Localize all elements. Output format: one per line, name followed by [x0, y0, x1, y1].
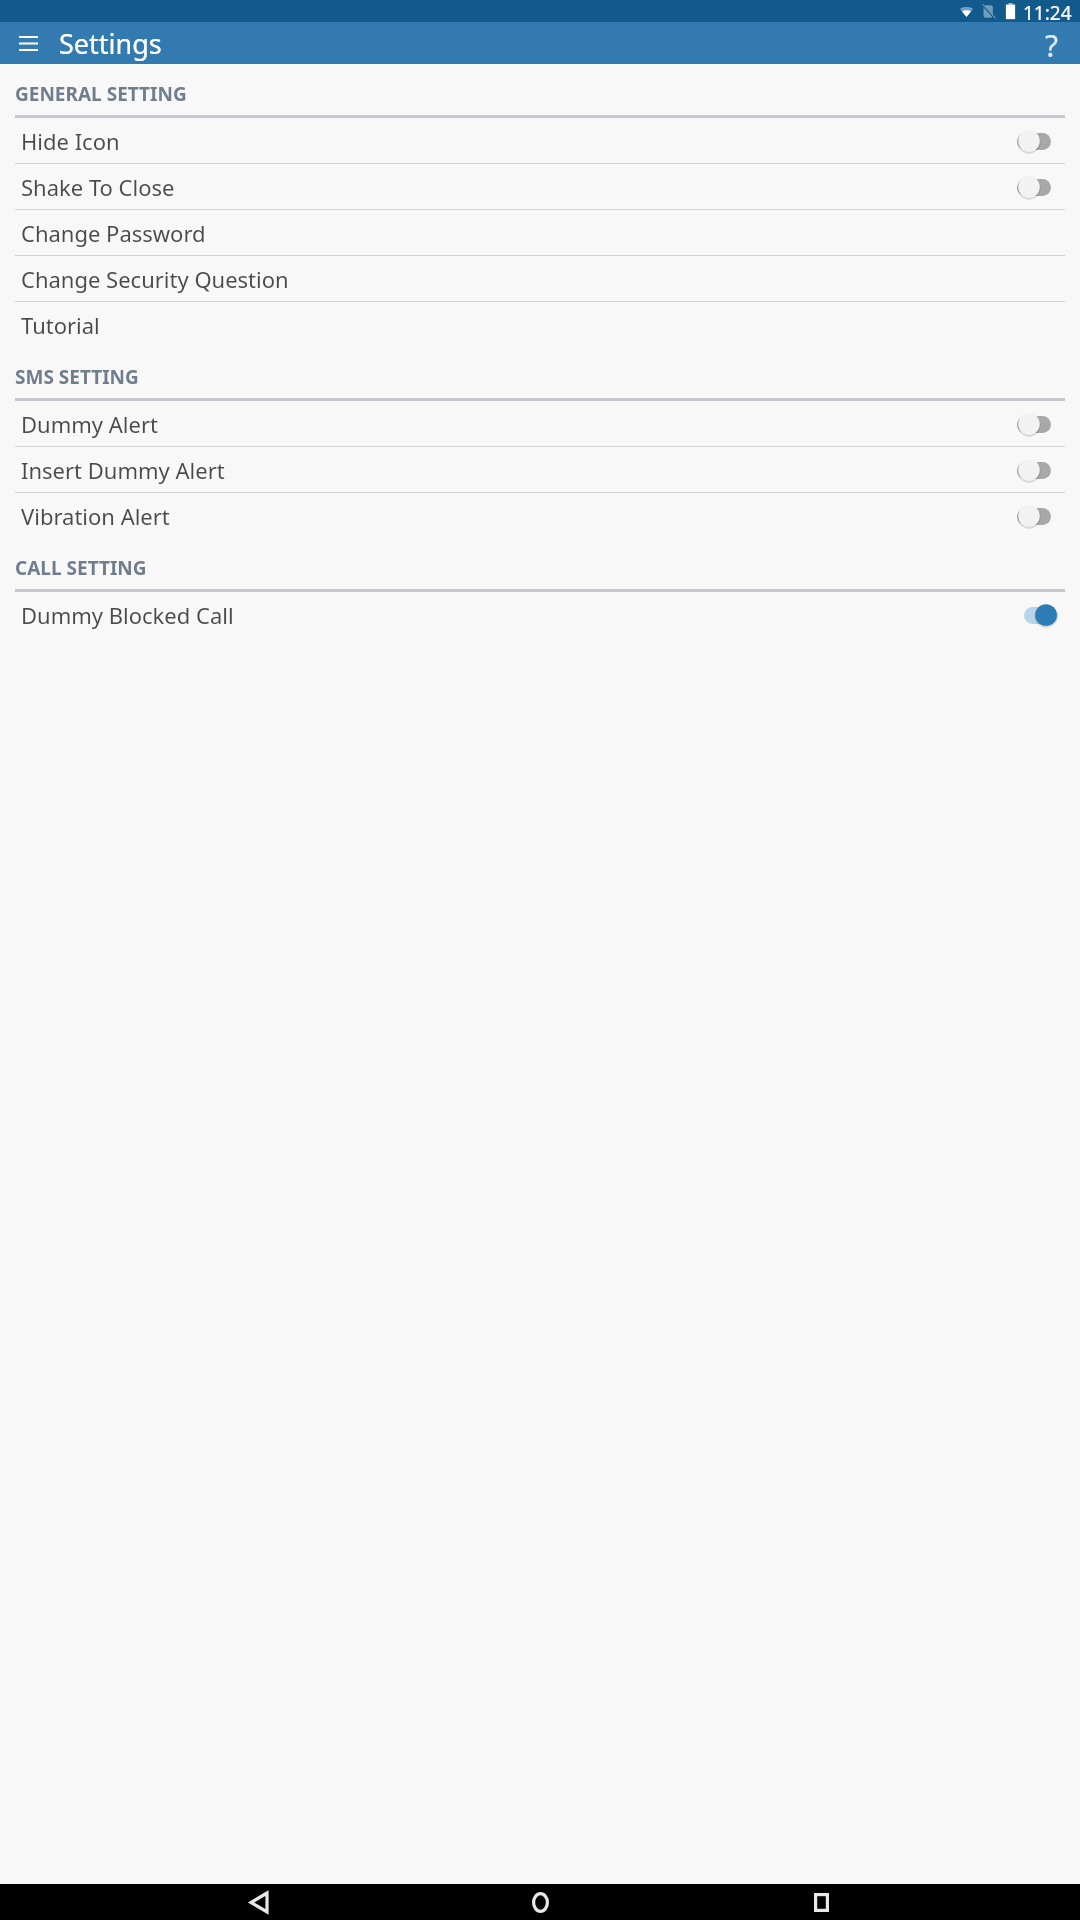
- button[interactable]: Change Password: [0, 210, 1080, 255]
- staticText: Settings: [59, 25, 162, 62]
- staticText: Dummy Blocked Call: [21, 600, 1017, 630]
- button[interactable]: Toggle, off: [1017, 174, 1058, 200]
- button[interactable]: Help: [1034, 25, 1070, 61]
- button[interactable]: Toggle, off: [1017, 457, 1058, 483]
- button[interactable]: Back: [237, 1884, 281, 1920]
- button[interactable]: Dummy Blocked Call: [0, 592, 1080, 637]
- button[interactable]: Tutorial: [0, 302, 1080, 347]
- button[interactable]: Home: [518, 1884, 562, 1920]
- staticText: SMS SETTING: [15, 364, 139, 390]
- button[interactable]: Toggle, on: [1017, 602, 1058, 628]
- button[interactable]: Vibration Alert: [0, 493, 1080, 538]
- button[interactable]: Hide Icon: [0, 118, 1080, 163]
- staticText: GENERAL SETTING: [15, 81, 187, 107]
- staticText: CALL SETTING: [15, 555, 147, 581]
- staticText: Shake To Close: [21, 172, 1017, 202]
- staticText: ?: [1045, 25, 1059, 61]
- staticText: Change Security Question: [21, 264, 1058, 294]
- staticText: Change Password: [21, 218, 1058, 248]
- button[interactable]: Shake To Close: [0, 164, 1080, 209]
- button[interactable]: Change Security Question: [0, 256, 1080, 301]
- button[interactable]: Toggle, off: [1017, 128, 1058, 154]
- staticText: Dummy Alert: [21, 409, 1017, 439]
- button[interactable]: Dummy Alert: [0, 401, 1080, 446]
- staticText: Hide Icon: [21, 126, 1017, 156]
- staticText: Tutorial: [21, 310, 1058, 340]
- staticText: 11:24: [1023, 0, 1072, 22]
- button[interactable]: Recent apps: [799, 1884, 843, 1920]
- button[interactable]: Open navigation menu: [10, 25, 46, 61]
- button[interactable]: Toggle, off: [1017, 503, 1058, 529]
- staticText: Vibration Alert: [21, 501, 1017, 531]
- staticText: Insert Dummy Alert: [21, 455, 1017, 485]
- button[interactable]: Toggle, off: [1017, 411, 1058, 437]
- button[interactable]: Insert Dummy Alert: [0, 447, 1080, 492]
